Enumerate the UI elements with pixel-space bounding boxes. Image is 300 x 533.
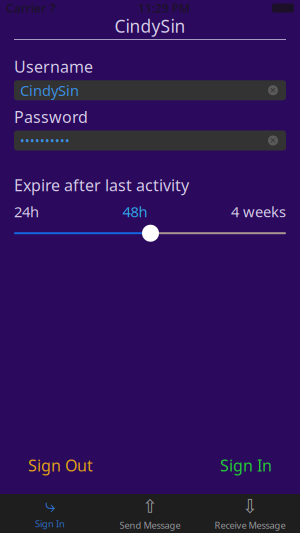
staticText: Username xyxy=(14,56,93,77)
button[interactable]: ⤷ xyxy=(0,494,100,533)
staticText: ⇧ xyxy=(142,496,158,517)
button[interactable]: ⇧ xyxy=(100,494,200,533)
staticText: Expire after last activity xyxy=(14,174,189,196)
staticText: 4 weeks xyxy=(231,202,286,221)
button[interactable]: ⇩ xyxy=(200,494,300,533)
staticText: 11:29 PM xyxy=(138,0,190,16)
staticText: Password xyxy=(14,106,88,127)
staticText: Sign In xyxy=(35,517,65,530)
staticText: CindySin xyxy=(20,80,79,100)
staticText: 48h xyxy=(122,202,147,221)
staticText: 24h xyxy=(14,202,39,221)
staticText: •••••••••• xyxy=(20,132,70,148)
button[interactable]: Clear text xyxy=(266,83,280,97)
staticText: Sign Out xyxy=(28,455,93,476)
staticText: Send Message xyxy=(119,519,180,531)
button[interactable]: Clear text xyxy=(266,133,280,147)
button[interactable]: Sign Out xyxy=(20,449,101,482)
staticText: Sign In xyxy=(220,455,272,476)
button[interactable]: Sign In xyxy=(212,449,280,482)
staticText: ⤷ xyxy=(45,497,55,515)
staticText: ✕ xyxy=(269,86,276,95)
staticText: Receive Message xyxy=(214,519,285,531)
staticText: CindySin xyxy=(114,14,185,37)
staticText: ⇩ xyxy=(242,496,258,517)
staticText: Carrier xyxy=(6,0,46,16)
staticText: ✕ xyxy=(269,136,276,145)
staticText: ? xyxy=(50,0,56,16)
